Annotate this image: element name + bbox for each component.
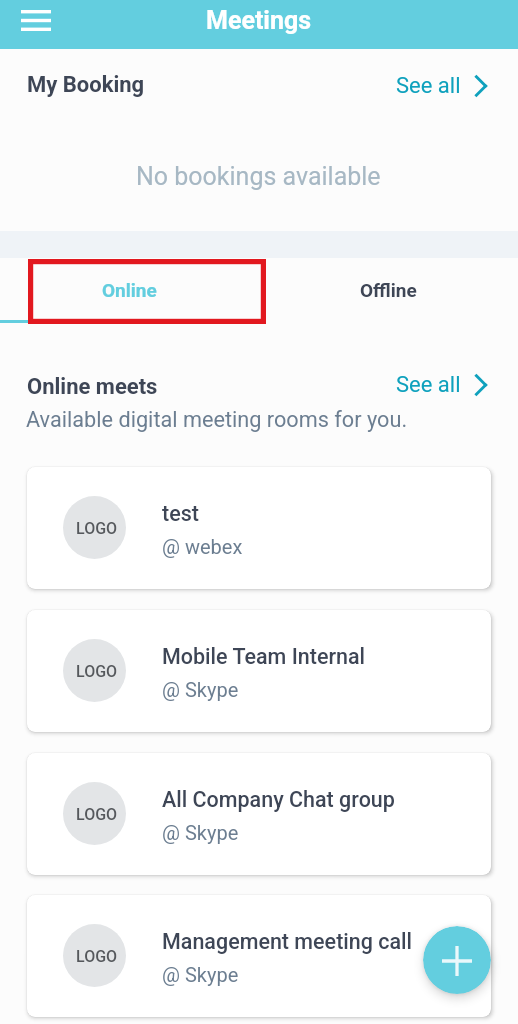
button[interactable]: Offline <box>259 257 518 323</box>
staticText: @ Skype <box>162 963 239 986</box>
button[interactable]: LOGO <box>27 753 491 875</box>
button[interactable]: See all <box>392 68 492 98</box>
staticText: No bookings available <box>136 162 381 191</box>
staticText: Mobile Team Internal <box>162 644 366 669</box>
staticText: LOGO <box>76 662 118 681</box>
button[interactable]: Online <box>0 257 259 323</box>
staticText: Management meeting call <box>162 929 413 954</box>
staticText: Online meets <box>27 374 158 400</box>
staticText: My Booking <box>27 72 145 98</box>
staticText: All Company Chat group <box>162 787 395 812</box>
button[interactable]: See all <box>392 367 492 397</box>
button[interactable]: LOGO <box>27 610 491 732</box>
staticText: LOGO <box>76 805 118 824</box>
staticText: @ Skype <box>162 678 239 701</box>
staticText: Online <box>102 279 157 301</box>
staticText: @ webex <box>162 535 243 558</box>
button[interactable]: Open navigation menu <box>15 0 57 41</box>
staticText: See all <box>396 73 461 93</box>
staticText: Offline <box>360 279 417 301</box>
button[interactable]: LOGO <box>27 895 491 1017</box>
staticText: @ Skype <box>162 821 239 844</box>
staticText: LOGO <box>76 947 118 966</box>
staticText: Meetings <box>206 6 312 35</box>
staticText: Available digital meeting rooms for you. <box>26 407 408 432</box>
staticText: test <box>162 501 199 526</box>
staticText: See all <box>396 372 461 392</box>
button[interactable]: LOGO <box>27 467 491 589</box>
button[interactable]: Add meeting <box>423 926 491 994</box>
staticText: LOGO <box>76 519 118 538</box>
